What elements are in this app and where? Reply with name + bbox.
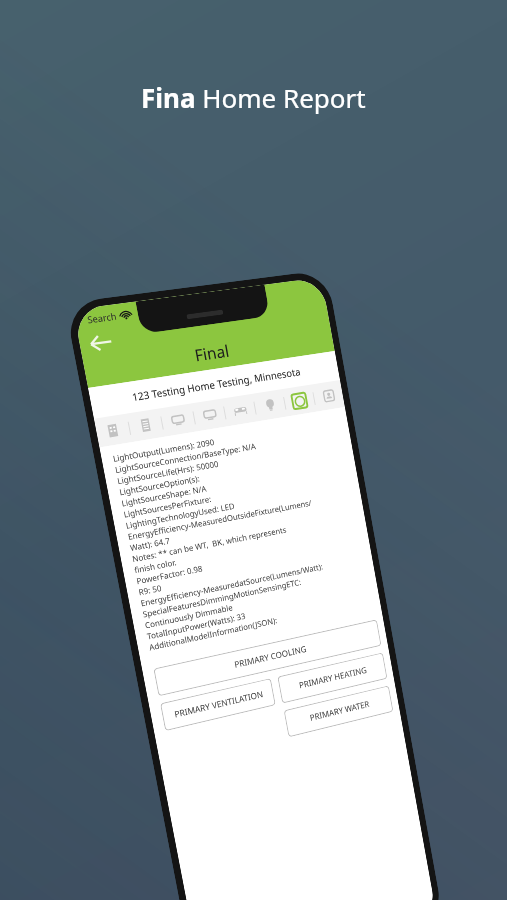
staticText: LightingTechnologyUsed: LED <box>125 500 236 531</box>
staticText: LightOutput(Lumens): 2090 <box>112 436 216 464</box>
staticText: PRIMARY COOLING <box>233 643 308 671</box>
staticText: Search <box>86 309 118 325</box>
button[interactable]: Bedroom <box>223 394 257 426</box>
staticText: Continuously Dimmable <box>144 601 234 631</box>
button[interactable]: Lighting <box>253 389 287 421</box>
button[interactable]: PRIMARY WATER <box>284 685 393 737</box>
staticText: SpecialFeaturesDimmingMotionSensingETC: <box>142 576 302 619</box>
button[interactable]: Screen <box>192 399 227 431</box>
staticText: Fina Home Report <box>141 80 366 115</box>
staticText: PRIMARY HEATING <box>298 664 368 691</box>
staticText: Notes: ** can be WT, BK, which represent… <box>131 524 287 564</box>
button[interactable]: Back <box>83 325 119 360</box>
button[interactable]: Document <box>127 408 164 442</box>
button[interactable]: Building <box>94 414 131 447</box>
button[interactable]: PRIMARY COOLING <box>153 619 382 696</box>
staticText: finish color. <box>133 556 178 575</box>
staticText: PRIMARY WATER <box>309 698 370 724</box>
staticText: PowerFactor: 0.98 <box>135 562 204 586</box>
staticText: LightSourceShape: N/A <box>120 482 208 509</box>
staticText: Final <box>193 339 231 366</box>
button[interactable]: Appliance <box>283 385 316 416</box>
button[interactable]: Occupant <box>312 380 345 412</box>
staticText: 123 Testing Home Testing, Minnesota <box>131 364 302 404</box>
button[interactable]: PRIMARY VENTILATION <box>160 678 276 731</box>
staticText: LightSourcesPerFixture: <box>123 493 213 520</box>
staticText: AdditionalModelInformation(JSON): <box>148 614 278 653</box>
staticText: EnergyEfficiency-MeasuredOutsideFixture(… <box>127 497 313 542</box>
button[interactable]: Monitor <box>160 403 196 437</box>
staticText: PRIMARY VENTILATION <box>173 688 264 721</box>
button[interactable]: PRIMARY HEATING <box>277 652 388 704</box>
staticText: LightSourceConnection/BaseType: N/A <box>114 440 257 475</box>
staticText: LightSourceLife(Hrs): 50000 <box>116 458 220 486</box>
staticText: R9: 50 <box>137 582 162 597</box>
staticText: TotalInputPower(Watts): 33 <box>146 610 246 642</box>
staticText: LightSourceOption(s): <box>118 472 201 497</box>
staticText: Watt): 64.7 <box>129 534 172 553</box>
staticText: EnergyEfficiency-MeasuredatSource(Lumens… <box>140 560 324 608</box>
